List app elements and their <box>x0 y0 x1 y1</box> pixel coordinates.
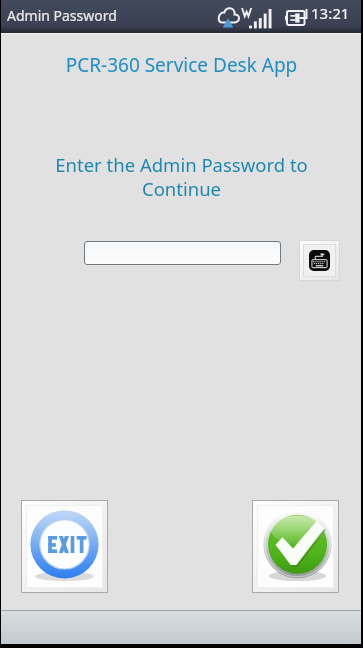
button[interactable] <box>84 241 281 265</box>
button[interactable]: Exit <box>21 500 108 593</box>
button[interactable]: Show keyboard <box>299 240 340 281</box>
button[interactable]: Confirm <box>252 500 339 593</box>
staticText: 13:21 <box>311 3 350 23</box>
staticText: Admin Password <box>7 6 117 25</box>
staticText: PCR-360 Service Desk App <box>0 52 363 78</box>
staticText: Enter the Admin Password to Continue <box>50 152 313 201</box>
